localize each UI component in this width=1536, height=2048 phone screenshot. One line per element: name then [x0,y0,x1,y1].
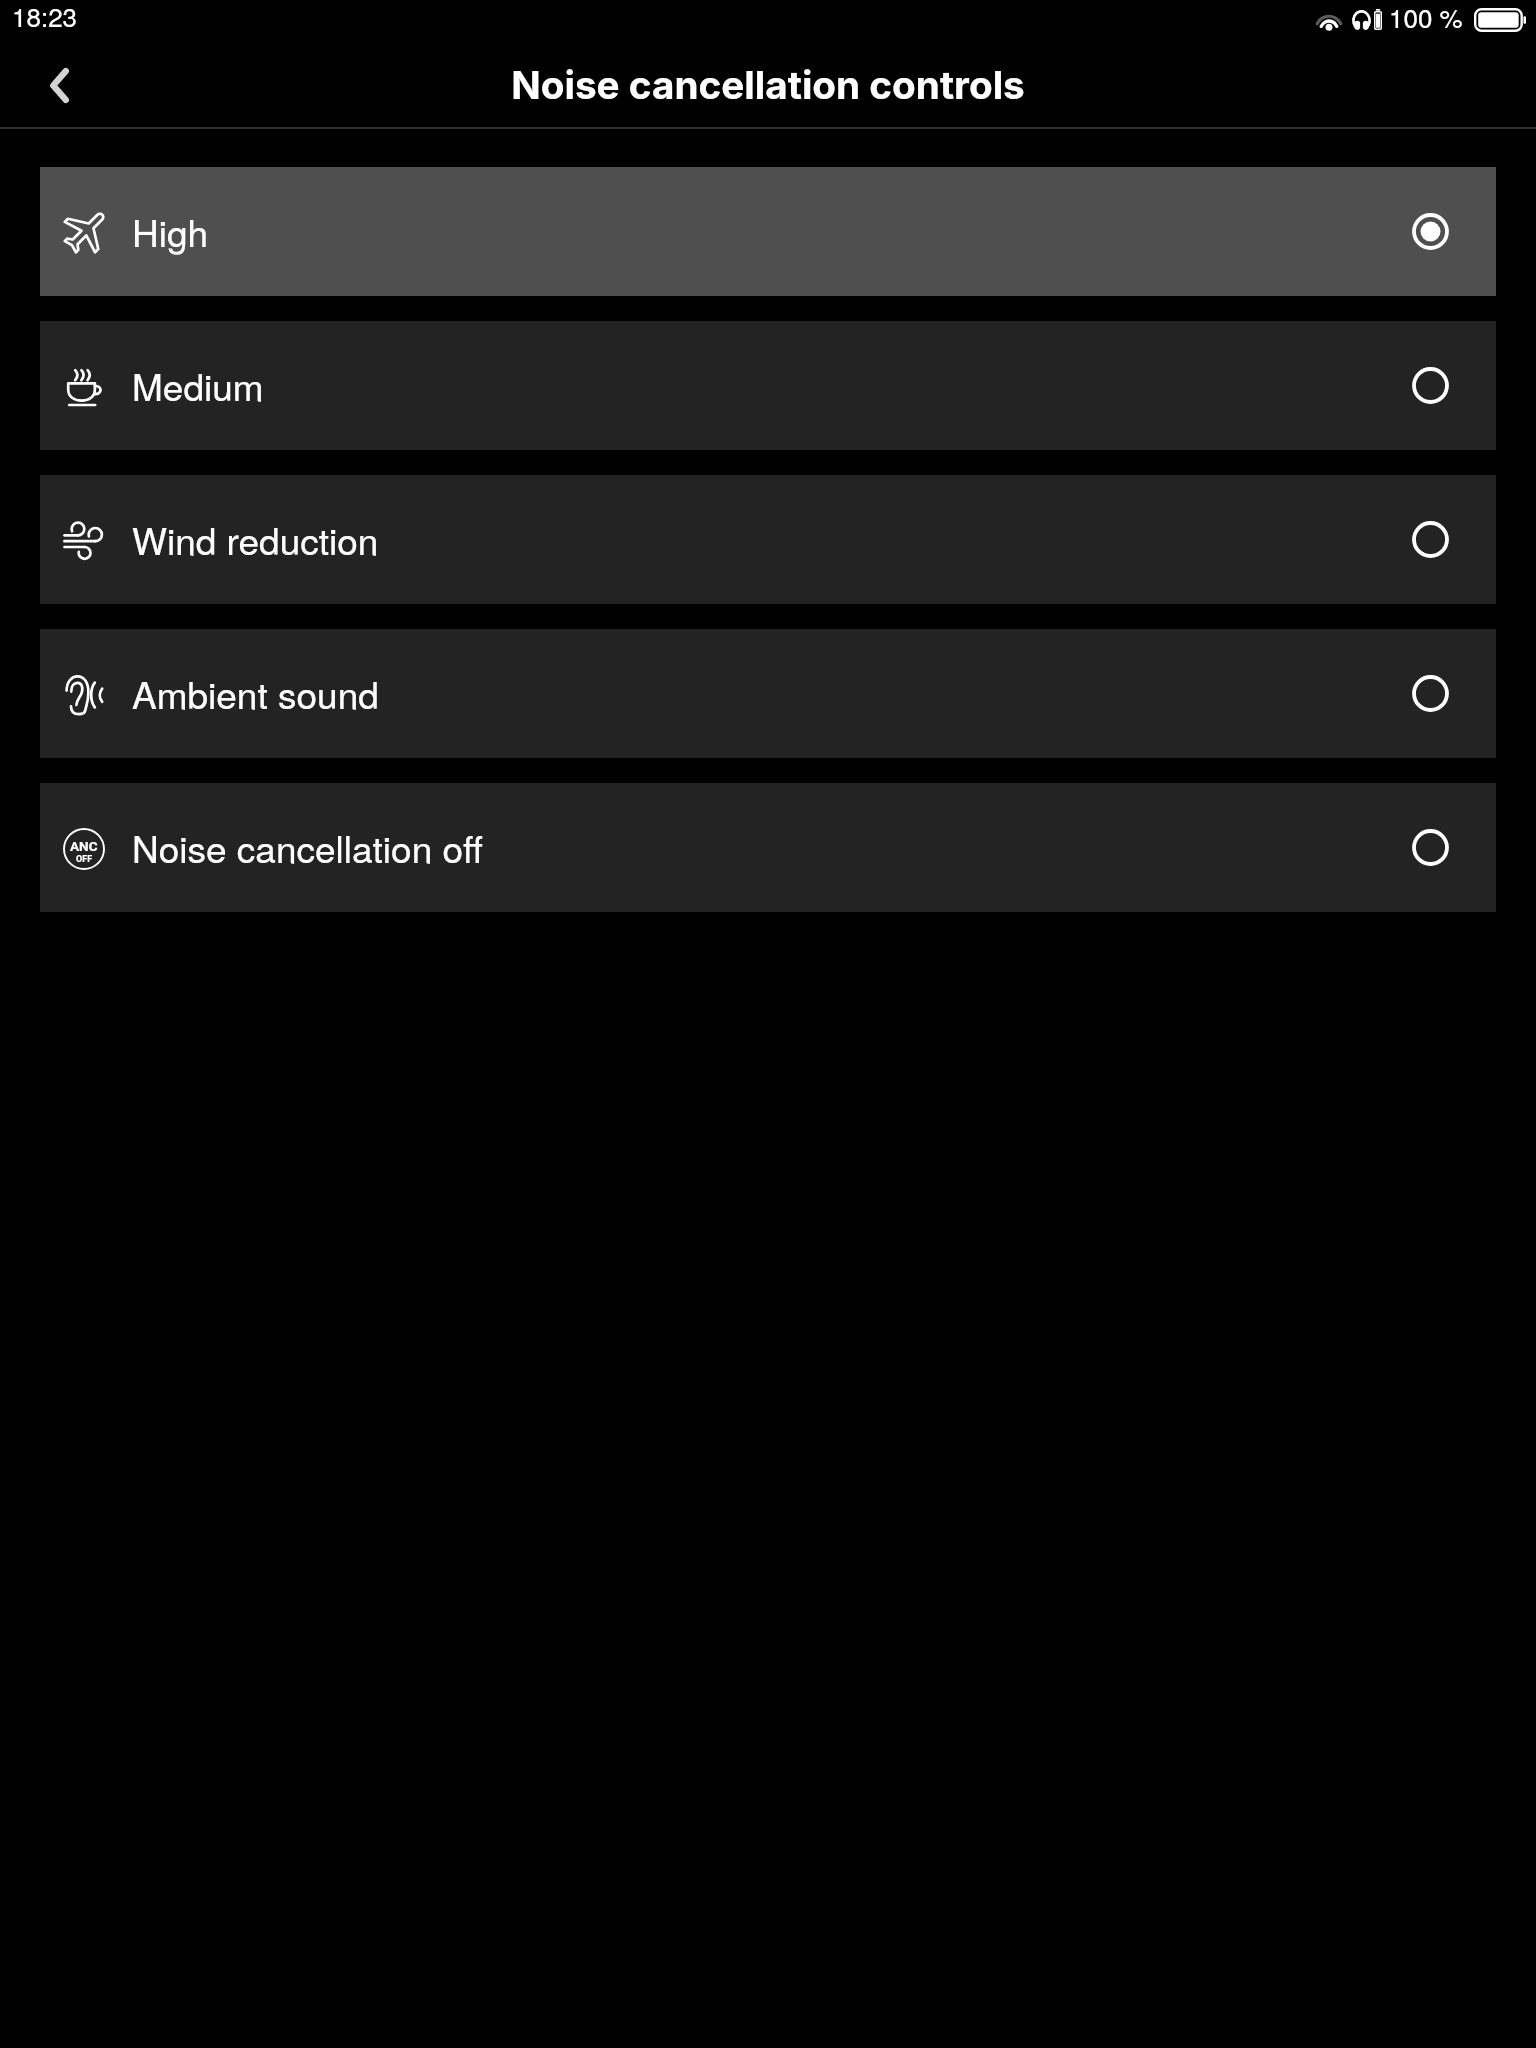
button[interactable]: ANC [40,783,1496,912]
staticText: High [132,205,209,258]
staticText: OFF [76,854,93,865]
staticText: Medium [132,359,264,412]
button[interactable]: Wind reduction [40,475,1496,604]
button[interactable]: Ambient sound [40,629,1496,758]
button[interactable]: Medium [40,321,1496,450]
staticText: ANC [70,838,98,854]
staticText: 100 % [1389,0,1463,35]
staticText: Wind reduction [132,513,379,566]
staticText: Noise cancellation controls [511,62,1025,109]
button[interactable]: Back [0,48,120,127]
staticText: 18:23 [12,0,78,34]
button[interactable]: High [40,167,1496,296]
staticText: Ambient sound [132,667,379,720]
staticText: Noise cancellation off [132,821,483,874]
